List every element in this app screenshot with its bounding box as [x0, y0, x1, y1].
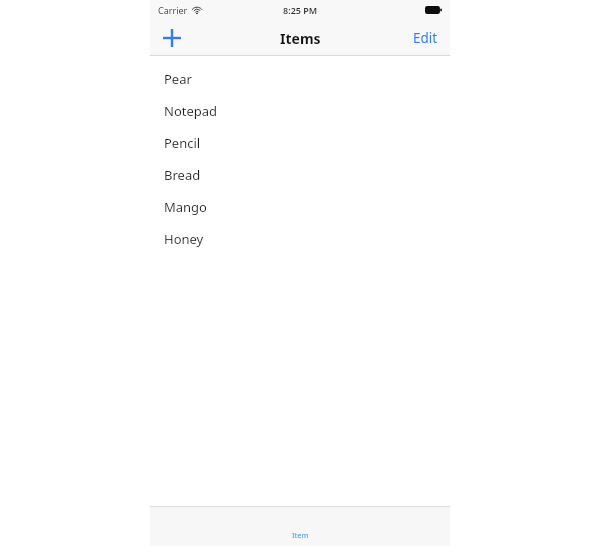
staticText: Mango	[164, 198, 207, 216]
button[interactable]: Pear	[150, 63, 450, 95]
button[interactable]: Honey	[150, 223, 450, 255]
staticText: Notepad	[164, 102, 218, 120]
staticText: Honey	[164, 230, 204, 248]
button[interactable]: Mango	[150, 191, 450, 223]
button[interactable]: Edit	[401, 20, 450, 56]
button[interactable]: Pencil	[150, 127, 450, 159]
staticText: Edit	[413, 29, 438, 47]
staticText: Pencil	[164, 134, 201, 152]
button[interactable]: Item	[282, 528, 319, 542]
button[interactable]: Add item	[150, 20, 194, 56]
button[interactable]: Notepad	[150, 95, 450, 127]
staticText: Items	[280, 29, 321, 48]
button[interactable]: Bread	[150, 159, 450, 191]
staticText: Item	[292, 530, 309, 540]
staticText: Pear	[164, 70, 192, 88]
staticText: 8:25 PM	[283, 4, 318, 16]
staticText: Bread	[164, 166, 201, 184]
staticText: Carrier	[158, 4, 188, 16]
